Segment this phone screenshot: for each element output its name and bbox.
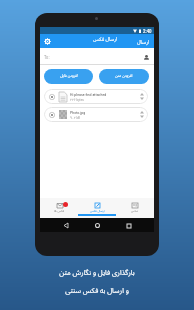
button[interactable]: Settings xyxy=(40,34,54,48)
staticText: ارسال xyxy=(137,38,150,45)
staticText: To: xyxy=(44,55,50,60)
staticText: تماس xyxy=(131,209,139,213)
button[interactable]: Photo.jpg xyxy=(44,107,148,122)
staticText: 2:40 xyxy=(143,28,152,34)
button[interactable]: افزودن فایل xyxy=(44,69,93,84)
staticText: ارسال فکس xyxy=(93,36,118,43)
staticText: Hi please find attached xyxy=(70,92,107,97)
button[interactable]: Hi please find attached xyxy=(44,89,148,104)
button[interactable]: ارسال xyxy=(133,34,154,48)
staticText: افزودن فایل xyxy=(60,73,78,78)
staticText: ارسال فکس xyxy=(90,209,105,213)
button[interactable]: Home xyxy=(92,220,103,231)
button[interactable]: Recents xyxy=(123,220,134,231)
staticText: ۹۰۲ kB xyxy=(70,116,80,120)
staticText: بارگذاری فایل و نگارش متن xyxy=(0,268,194,278)
button[interactable]: فکس ها xyxy=(40,198,78,218)
button[interactable]: افزودن متن xyxy=(99,69,149,84)
button[interactable]: تماس xyxy=(116,198,154,218)
staticText: ۲۲۶ bytes xyxy=(70,98,84,102)
button[interactable]: Back xyxy=(60,220,71,231)
staticText: Photo.jpg xyxy=(70,110,86,115)
staticText: فکس ها xyxy=(54,209,65,213)
button[interactable]: Pick contact xyxy=(141,52,151,62)
staticText: افزودن متن xyxy=(115,73,133,78)
staticText: و ارسال به فکس سنتی xyxy=(0,286,194,296)
button[interactable]: ارسال فکس xyxy=(78,198,116,218)
